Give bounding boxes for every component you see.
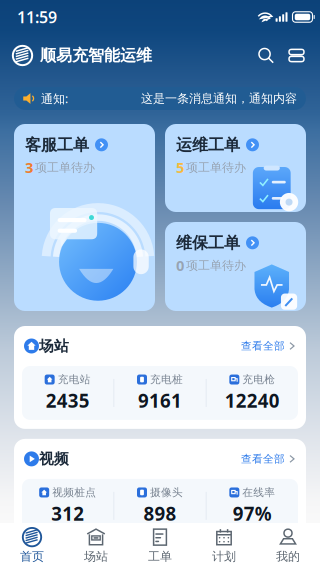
staticText: 项工单待办: [35, 160, 95, 175]
staticText: 充电枪: [242, 373, 275, 386]
staticText: 计划: [212, 549, 236, 564]
staticText: 12240: [225, 388, 280, 413]
staticText: 场站: [84, 549, 108, 564]
button[interactable]: 查看全部: [241, 339, 296, 352]
staticText: 项工单待办: [186, 160, 246, 175]
staticText: 客服工单: [25, 135, 89, 155]
staticText: 11:59: [17, 6, 57, 28]
staticText: 3: [25, 158, 33, 177]
staticText: 通知:: [41, 90, 68, 106]
staticText: 充电站: [58, 373, 91, 386]
button[interactable]: 我的: [256, 523, 320, 568]
button[interactable]: 运维工单: [165, 124, 306, 212]
button[interactable]: 通知:: [14, 87, 306, 110]
staticText: 我的: [276, 549, 300, 564]
button[interactable]: 场站: [64, 523, 128, 568]
staticText: 充电桩: [150, 373, 183, 386]
staticText: 查看全部: [241, 339, 285, 352]
button[interactable]: 维保工单: [165, 222, 306, 311]
button[interactable]: 客服工单: [14, 124, 155, 311]
staticText: 视频桩点: [52, 486, 96, 499]
staticText: 工单: [148, 549, 172, 564]
staticText: 顺易充智能运维: [40, 46, 152, 65]
button[interactable]: 首页: [0, 523, 64, 568]
staticText: 9161: [138, 388, 182, 413]
button[interactable]: 工单: [128, 523, 192, 568]
staticText: 2435: [46, 388, 90, 413]
staticText: 5: [176, 158, 184, 177]
staticText: 视频: [39, 450, 69, 468]
staticText: 97%: [233, 501, 272, 526]
staticText: 898: [143, 501, 176, 526]
button[interactable]: 计划: [192, 523, 256, 568]
button[interactable]: 切换视图: [285, 44, 308, 67]
button[interactable]: 搜索: [254, 43, 278, 67]
staticText: 这是一条消息通知，通知内容: [141, 91, 297, 106]
staticText: 查看全部: [241, 452, 285, 465]
staticText: 维保工单: [176, 233, 240, 253]
button[interactable]: 查看全部: [241, 452, 296, 465]
staticText: 312: [51, 501, 84, 526]
staticText: 项工单待办: [186, 258, 246, 273]
staticText: 摄像头: [150, 486, 183, 499]
staticText: 首页: [20, 549, 44, 564]
staticText: 在线率: [242, 486, 275, 499]
staticText: 运维工单: [176, 135, 240, 155]
staticText: 场站: [39, 337, 69, 355]
staticText: 0: [176, 256, 184, 275]
